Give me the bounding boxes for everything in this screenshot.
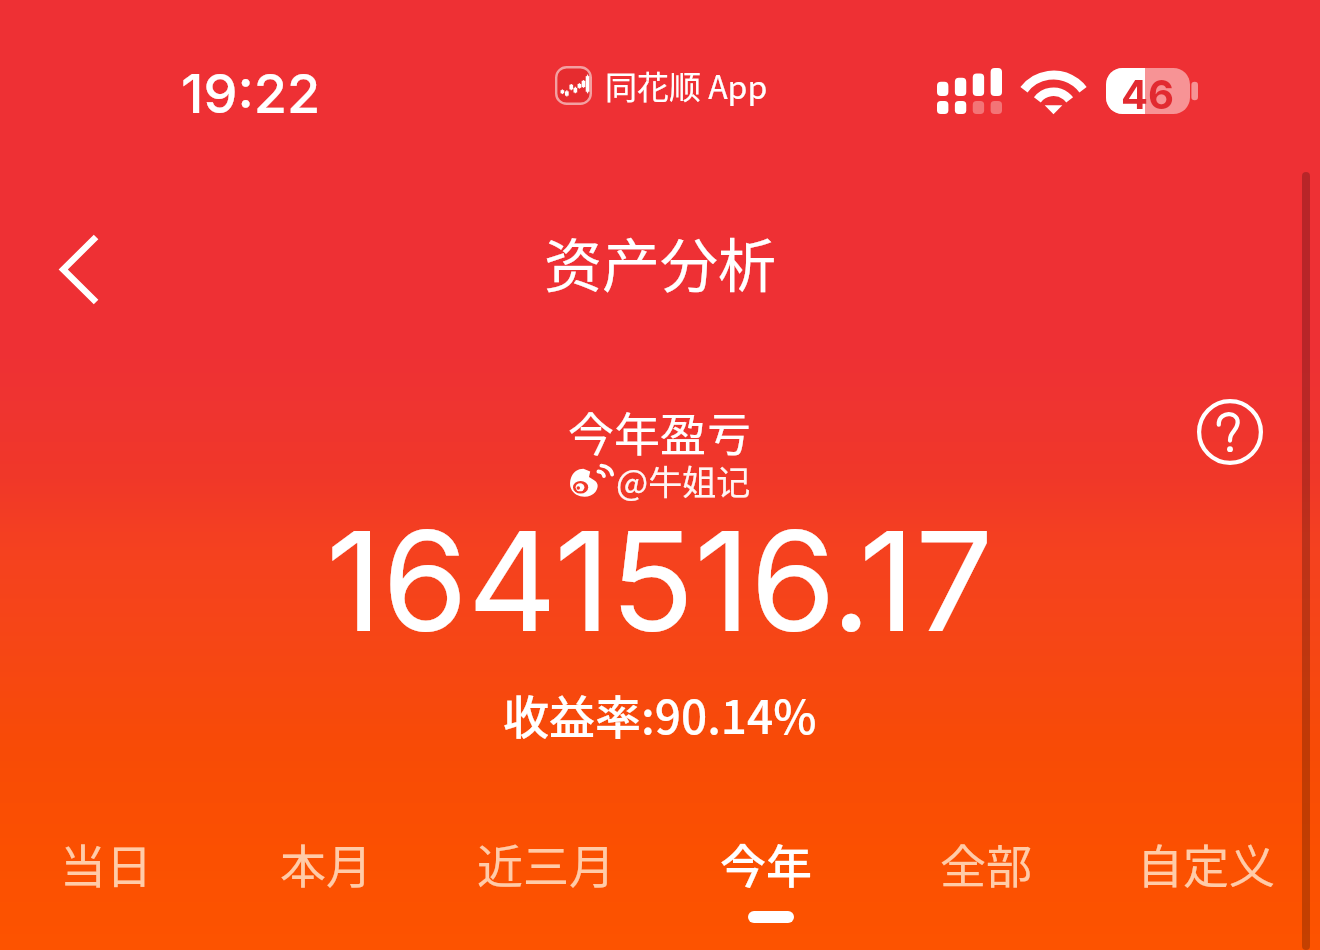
button[interactable]: 近三月 <box>446 815 646 935</box>
staticText: 自定义 <box>1137 830 1275 897</box>
staticText: 近三月 <box>477 830 615 897</box>
staticText: 收益率:90.14% <box>503 681 817 748</box>
staticText: 今年盈亏 <box>568 398 752 465</box>
staticText: 同花顺 App <box>605 62 768 108</box>
staticText: 本月 <box>280 830 372 897</box>
staticText: 今年 <box>720 830 812 897</box>
staticText: 当日 <box>60 830 152 897</box>
button[interactable]: 当日 <box>6 815 206 935</box>
staticText: 19:22 <box>181 61 321 126</box>
button[interactable]: Back <box>23 214 133 324</box>
button[interactable]: 自定义 <box>1106 815 1306 935</box>
staticText: 全部 <box>940 830 1032 897</box>
staticText: 1641516.17 <box>326 497 994 664</box>
staticText: 资产分析 <box>544 220 777 304</box>
button[interactable]: Help <box>1194 396 1266 468</box>
button[interactable]: 本月 <box>226 815 426 935</box>
button[interactable]: 今年 <box>666 815 866 935</box>
button[interactable]: 全部 <box>886 815 1086 935</box>
staticText: 46 <box>1121 70 1175 116</box>
staticText: @牛姐记 <box>616 456 751 505</box>
